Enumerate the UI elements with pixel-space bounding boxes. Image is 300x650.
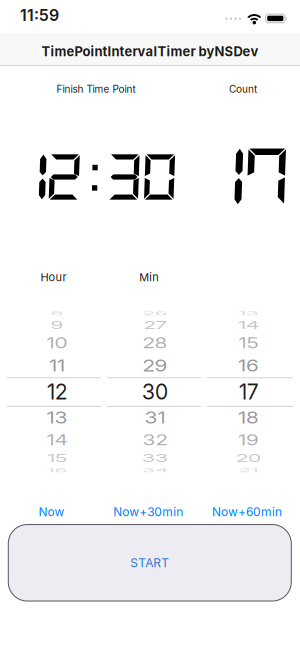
staticText: 29: [142, 353, 167, 378]
button[interactable]: Now: [38, 505, 64, 519]
staticText: 9: [50, 313, 63, 338]
staticText: 20: [236, 446, 261, 471]
staticText: 15: [238, 331, 258, 356]
staticText: 27: [143, 313, 166, 338]
staticText: 21: [238, 458, 258, 483]
staticText: 28: [142, 331, 167, 356]
staticText: 12: [47, 379, 67, 404]
staticText: 19: [238, 428, 259, 453]
staticText: Finish Time Point: [56, 83, 135, 95]
staticText: 13: [46, 405, 67, 430]
staticText: 14: [46, 428, 67, 453]
staticText: 13: [238, 301, 259, 326]
staticText: Now: [38, 505, 64, 519]
staticText: 16: [238, 353, 259, 378]
staticText: 11: [49, 353, 65, 378]
staticText: 34: [142, 458, 168, 483]
staticText: 15: [47, 446, 67, 471]
staticText: 10: [46, 331, 67, 356]
button[interactable]: Now+30min: [113, 505, 183, 519]
staticText: 14: [238, 313, 259, 338]
staticText: Now+30min: [113, 505, 183, 519]
staticText: Hour: [40, 271, 66, 284]
staticText: Min: [139, 271, 158, 284]
button[interactable]: Now+60min: [212, 505, 282, 519]
staticText: 8: [50, 301, 63, 326]
staticText: Now+60min: [212, 505, 282, 519]
staticText: START: [130, 556, 169, 570]
staticText: 32: [142, 428, 167, 453]
staticText: TimePointIntervalTimer byNSDev: [41, 44, 258, 59]
staticText: 18: [238, 405, 259, 430]
staticText: 33: [142, 446, 168, 471]
staticText: 16: [46, 458, 67, 483]
staticText: Count: [229, 83, 257, 95]
staticText: 31: [144, 405, 165, 430]
staticText: 11:59: [20, 6, 59, 25]
staticText: 26: [142, 301, 167, 326]
staticText: 30: [142, 379, 168, 404]
staticText: 17: [239, 379, 258, 404]
button[interactable]: START: [8, 524, 291, 601]
